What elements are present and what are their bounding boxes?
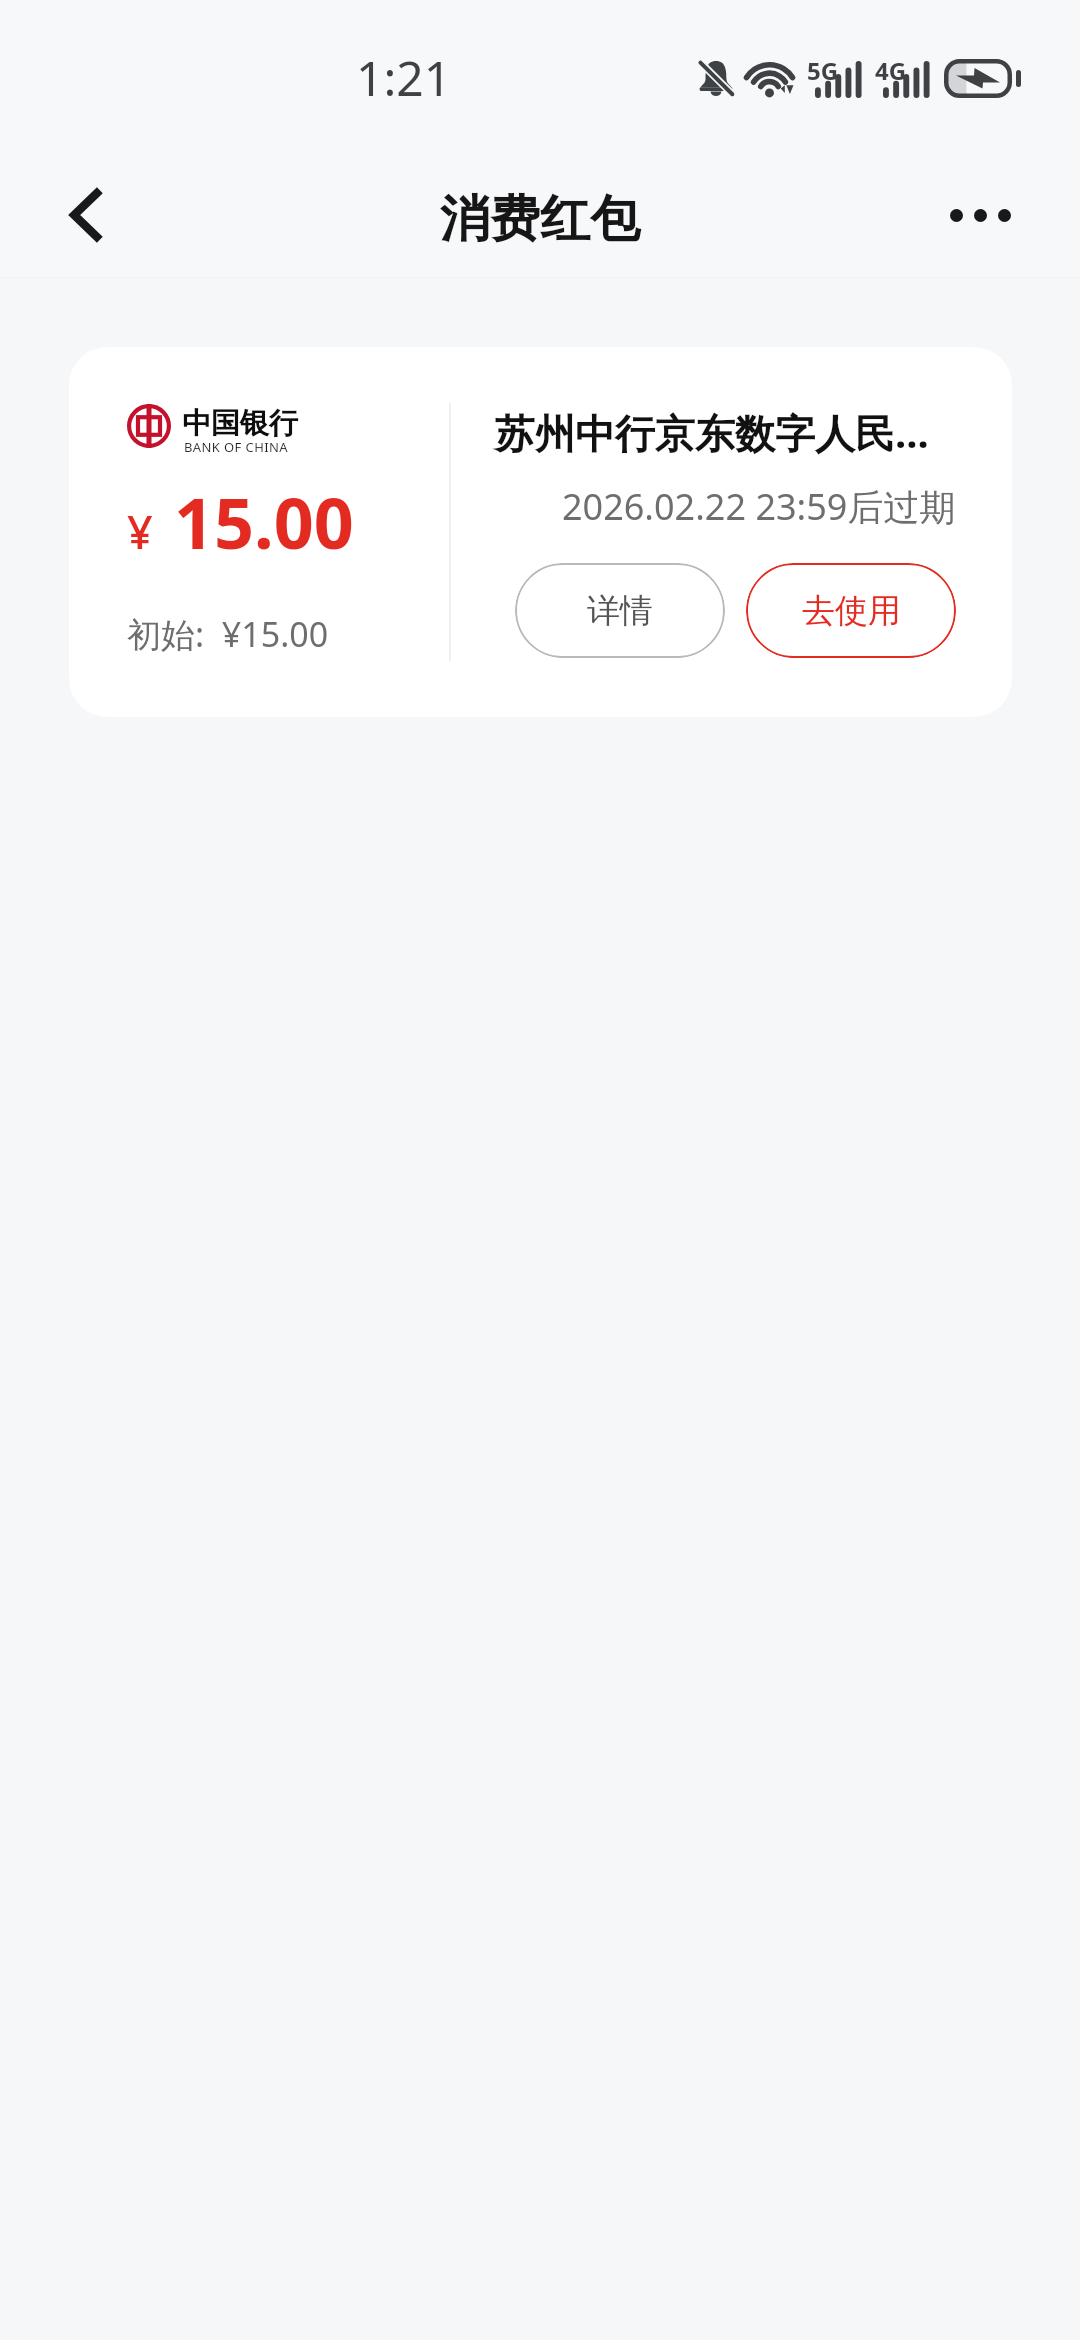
staticText: 苏州中行京东数字人民... bbox=[495, 405, 956, 460]
button[interactable]: More options bbox=[934, 169, 1026, 261]
staticText: 中国银行 bbox=[182, 405, 298, 442]
staticText: 2026.02.22 23:59后过期 bbox=[562, 482, 956, 531]
button[interactable]: 中国银行 bbox=[69, 347, 1012, 717]
staticText: 消费红包 bbox=[440, 188, 640, 251]
staticText: 4G bbox=[875, 54, 907, 87]
staticText: BANK OF CHINA bbox=[184, 438, 288, 456]
staticText: 5G bbox=[807, 54, 839, 87]
staticText: 详情 bbox=[587, 590, 653, 632]
staticText: 1:21 bbox=[356, 45, 452, 110]
button[interactable]: 详情 bbox=[515, 563, 725, 658]
staticText: ¥ bbox=[127, 501, 153, 562]
staticText: 去使用 bbox=[802, 590, 901, 632]
button[interactable]: Back bbox=[39, 169, 131, 261]
staticText: 15.00 bbox=[174, 474, 354, 569]
staticText: 初始: ¥15.00 bbox=[127, 611, 329, 657]
button[interactable]: 去使用 bbox=[746, 563, 956, 658]
